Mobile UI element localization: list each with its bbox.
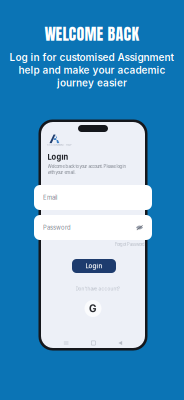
staticText: Login bbox=[85, 262, 102, 270]
staticText: Email bbox=[43, 194, 57, 201]
button[interactable]: Home bbox=[91, 341, 95, 345]
staticText: Login bbox=[47, 152, 68, 161]
staticText: with your email. bbox=[47, 170, 75, 175]
staticText: journey easier bbox=[57, 77, 127, 89]
button[interactable]: Email bbox=[34, 185, 152, 210]
staticText: Don't have account? bbox=[75, 286, 119, 291]
staticText: ASSIGNMENT HELP bbox=[47, 143, 72, 146]
button[interactable]: Login bbox=[72, 259, 116, 273]
staticText: Password bbox=[43, 224, 71, 231]
staticText: Log in for customised Assignment bbox=[9, 51, 174, 63]
staticText: Welcome back to your account. Please log… bbox=[47, 164, 125, 169]
button[interactable]: Sign in with Google bbox=[84, 300, 101, 317]
staticText: WELCOME BACK bbox=[44, 22, 139, 46]
staticText: G bbox=[89, 302, 97, 315]
staticText: help and make your academic bbox=[18, 64, 165, 76]
button[interactable]: Don't have account? bbox=[75, 286, 119, 291]
button[interactable]: Password bbox=[34, 215, 152, 240]
button[interactable]: Forgot Password? bbox=[115, 242, 147, 247]
button[interactable]: Back bbox=[118, 341, 122, 345]
staticText: Forgot Password? bbox=[115, 242, 147, 247]
